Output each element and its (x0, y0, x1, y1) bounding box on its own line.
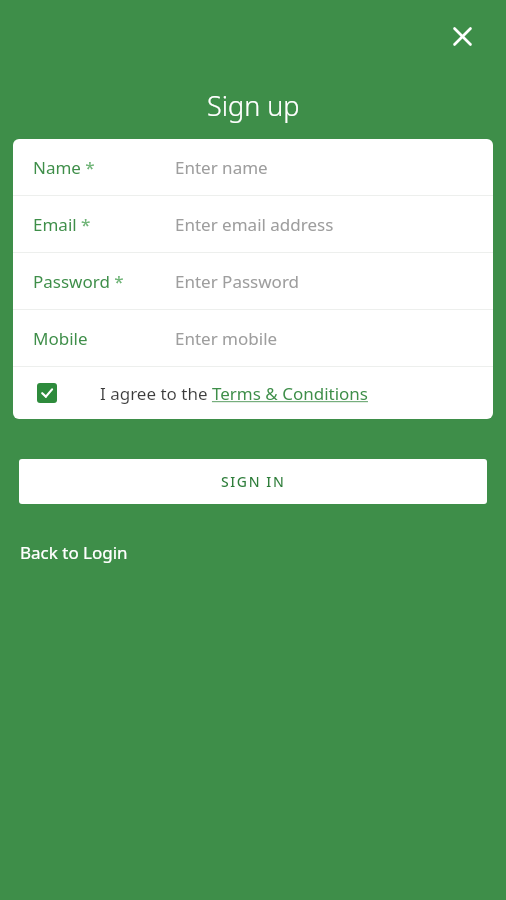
staticText: Enter name (175, 156, 268, 179)
button[interactable]: Password * (13, 253, 493, 309)
staticText: Enter email address (175, 213, 334, 236)
button[interactable]: Mobile (13, 310, 493, 366)
staticText: Sign up (207, 87, 300, 124)
staticText: Back to Login (20, 541, 128, 564)
staticText: SIGN IN (221, 472, 286, 491)
staticText: Enter Password (175, 270, 300, 293)
staticText: Password * (33, 270, 124, 293)
staticText: Name * (33, 156, 95, 179)
staticText: I agree to the Terms & Conditions (100, 382, 368, 405)
button[interactable]: I agree to the Terms & Conditions (13, 367, 493, 419)
button[interactable]: Email * (13, 196, 493, 252)
button[interactable]: Name * (13, 139, 493, 195)
button[interactable]: Back to Login (19, 537, 129, 568)
staticText: Email * (33, 213, 91, 236)
staticText: Mobile (33, 327, 88, 350)
button[interactable]: SIGN IN (19, 459, 487, 504)
button[interactable]: Close (442, 16, 482, 56)
staticText: Enter mobile (175, 327, 278, 350)
